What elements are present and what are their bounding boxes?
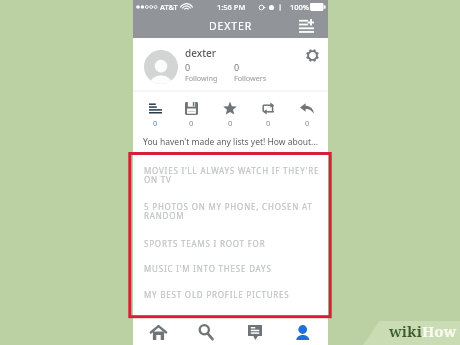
button[interactable]: Messages <box>233 319 277 345</box>
button[interactable]: 5 PHOTOS ON MY PHONE, CHOSEN AT RANDOM <box>133 193 328 230</box>
button[interactable]: Reposts <box>252 100 284 128</box>
staticText: 0 <box>234 61 240 73</box>
staticText: 0 <box>185 61 191 73</box>
button[interactable]: SPORTS TEAMS I ROOT FOR <box>133 230 328 256</box>
staticText: How <box>422 321 457 341</box>
button[interactable]: Search <box>184 319 228 345</box>
button[interactable]: New list <box>297 17 315 34</box>
staticText: 0 <box>305 118 310 128</box>
button[interactable]: Stars <box>214 100 246 128</box>
button[interactable]: MUSIC I'M INTO THESE DAYS <box>133 256 328 281</box>
staticText: 0 <box>266 118 271 128</box>
button[interactable]: Replies <box>291 100 323 128</box>
button[interactable]: Home <box>136 319 180 345</box>
staticText: dexter <box>185 46 216 60</box>
staticText: 1:56 PM <box>217 2 246 12</box>
staticText: 100% <box>290 2 310 12</box>
staticText: DEXTER <box>209 19 253 33</box>
staticText: MUSIC I'M INTO THESE DAYS <box>144 263 272 274</box>
staticText: MY BEST OLD PROFILE PICTURES <box>144 289 290 300</box>
button[interactable]: MOVIES I'LL ALWAYS WATCH IF THEY'RE ON T… <box>133 158 328 193</box>
staticText: 5 PHOTOS ON MY PHONE, CHOSEN AT RANDOM <box>144 201 326 222</box>
staticText: AT&T <box>160 2 178 12</box>
staticText: MOVIES I'LL ALWAYS WATCH IF THEY'RE ON T… <box>144 165 326 186</box>
staticText: 0 <box>189 118 194 128</box>
staticText: Following <box>185 73 218 83</box>
button[interactable]: Lists <box>139 100 171 128</box>
button[interactable]: Saved <box>175 100 207 128</box>
button[interactable]: Settings <box>303 46 321 64</box>
staticText: 0 <box>153 118 158 128</box>
staticText: You haven't made any lists yet! How abou… <box>143 136 318 148</box>
staticText: wiki <box>389 321 422 341</box>
staticText: Followers <box>234 73 267 83</box>
button[interactable]: MY BEST OLD PROFILE PICTURES <box>133 281 328 307</box>
staticText: 0 <box>228 118 233 128</box>
button[interactable]: Profile <box>281 319 325 345</box>
staticText: SPORTS TEAMS I ROOT FOR <box>144 238 266 249</box>
